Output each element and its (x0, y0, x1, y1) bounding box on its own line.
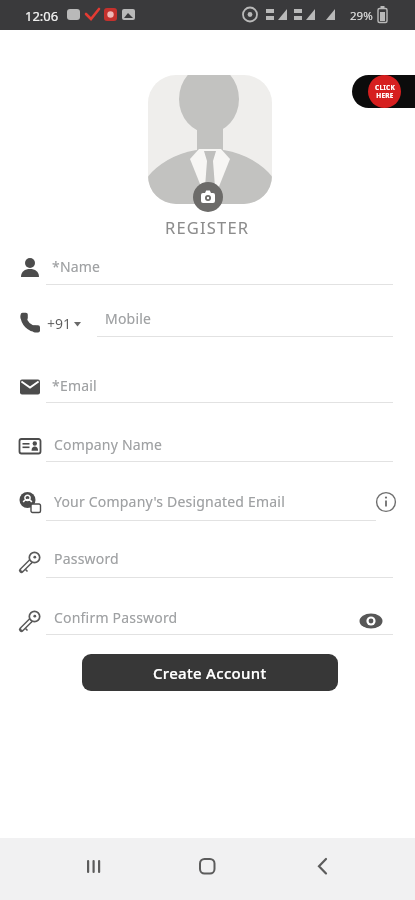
button[interactable] (359, 611, 383, 631)
staticText: *Email (52, 376, 97, 395)
staticText: *Name (52, 257, 101, 276)
button[interactable]: +91 (0, 306, 415, 342)
staticText: 29% (350, 8, 373, 24)
button[interactable] (375, 491, 397, 513)
staticText: +91 (47, 314, 72, 333)
staticText: Password (54, 549, 119, 568)
button[interactable] (80, 852, 108, 880)
staticText: Mobile (105, 309, 152, 328)
staticText: REGISTER (165, 216, 250, 238)
button[interactable]: Your Company's Designated Email (0, 487, 415, 525)
staticText: Company Name (54, 435, 163, 454)
button[interactable]: *Email (0, 371, 415, 407)
button[interactable]: *Name (0, 252, 415, 289)
staticText: Create Account (153, 663, 267, 683)
button[interactable] (193, 852, 221, 880)
button[interactable] (193, 182, 223, 212)
button[interactable]: Create Account (82, 654, 338, 691)
button[interactable]: Password (0, 544, 415, 582)
button[interactable]: Company Name (0, 430, 415, 466)
button[interactable]: Confirm Password (0, 603, 415, 639)
staticText: CLICK HERE (375, 83, 395, 100)
button[interactable]: CLICK HERE (352, 75, 415, 108)
staticText: Your Company's Designated Email (54, 492, 285, 511)
button[interactable] (308, 852, 336, 880)
staticText: 12:06 (25, 7, 59, 25)
staticText: Confirm Password (54, 608, 178, 627)
